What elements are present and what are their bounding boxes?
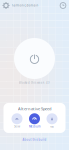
button[interactable]: Fast	[45, 113, 58, 128]
button[interactable]: Medium	[28, 113, 41, 128]
staticText: Slow	[14, 125, 20, 128]
button[interactable]: About this build	[20, 136, 48, 143]
button[interactable]: Power	[14, 38, 55, 79]
staticText: Medium	[29, 125, 40, 128]
staticText: Alternative Speed	[18, 106, 51, 111]
staticText: harmonic.domain	[11, 4, 38, 7]
button[interactable]: Slow	[10, 113, 23, 128]
staticText: Blocked this week 49	[19, 81, 50, 84]
staticText: Fast	[50, 125, 54, 128]
button[interactable]: History	[59, 1, 67, 9]
staticText: About this build	[22, 138, 46, 141]
button[interactable]: Settings	[2, 1, 10, 9]
